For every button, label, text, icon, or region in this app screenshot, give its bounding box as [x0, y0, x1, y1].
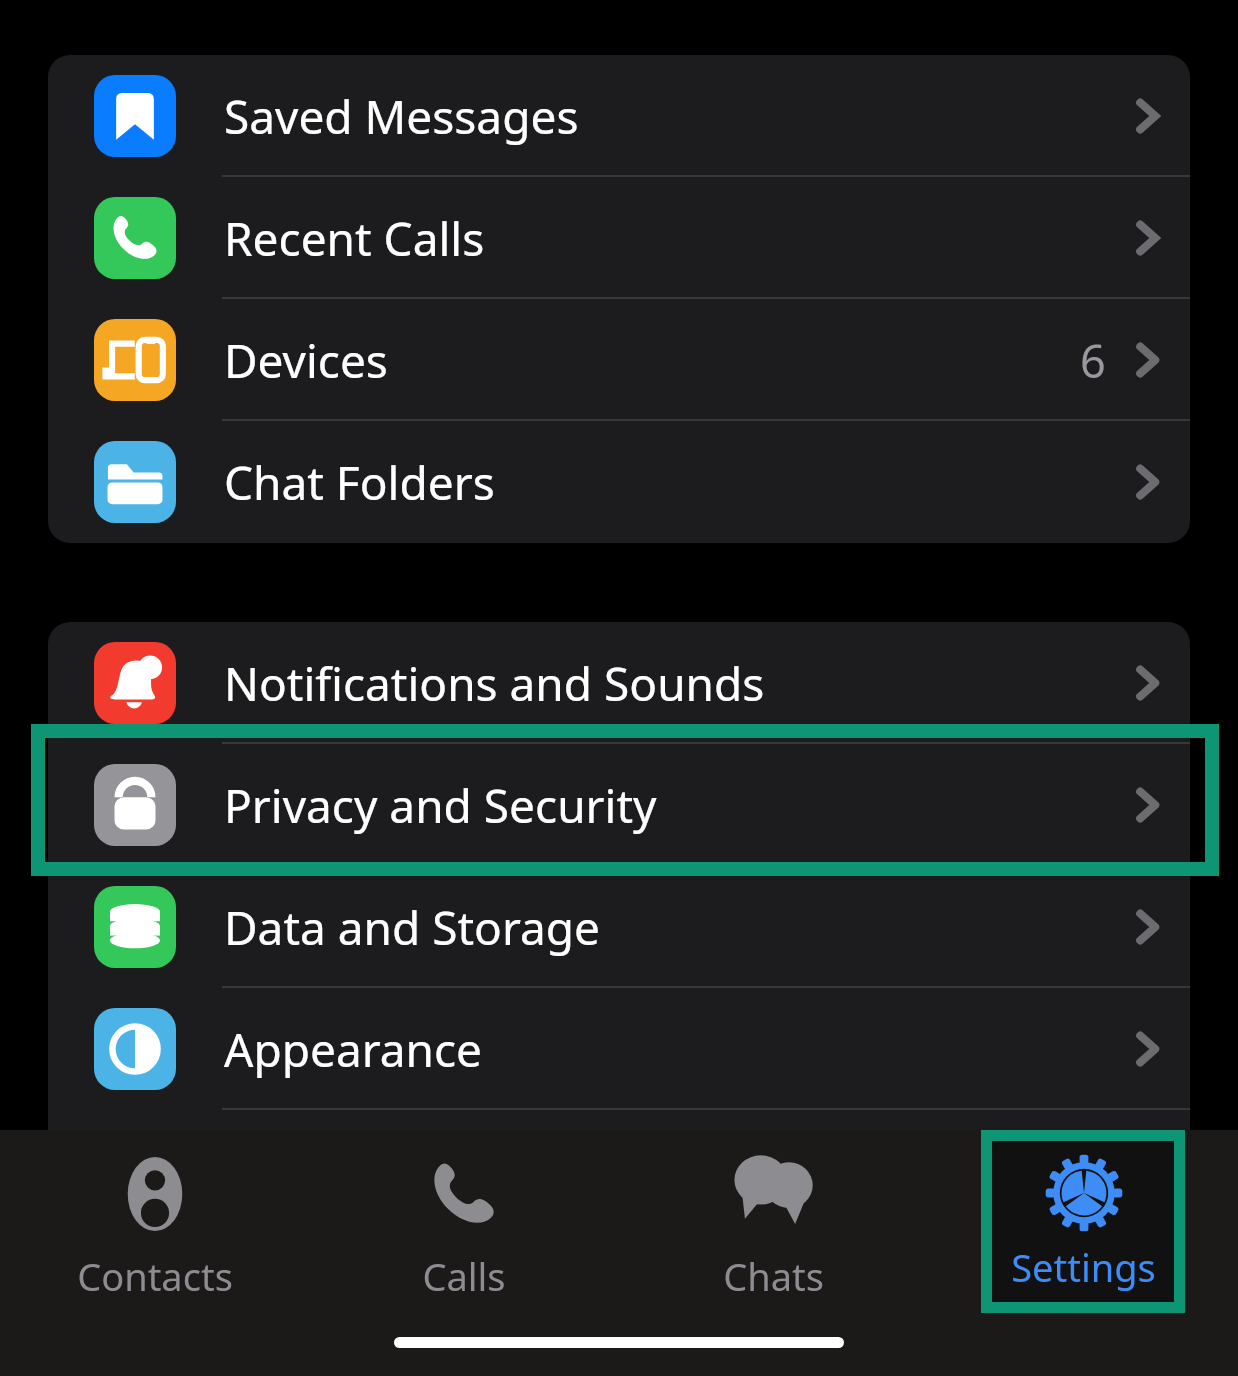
button[interactable]: Privacy and Security [48, 744, 1190, 866]
button[interactable]: Saved Messages [48, 55, 1190, 177]
staticText: Calls [422, 1250, 506, 1302]
staticText: Notifications and Sounds [224, 652, 765, 715]
other: Settings [1040, 1149, 1128, 1237]
staticText: Privacy and Security [224, 774, 657, 837]
staticText: Data and Storage [224, 896, 601, 959]
button[interactable]: Chats [671, 1130, 875, 1313]
staticText: Saved Messages [224, 85, 579, 148]
staticText: Settings [1011, 1241, 1156, 1293]
button[interactable]: Appearance [48, 988, 1190, 1110]
other: Contacts [111, 1150, 199, 1238]
staticText: 6 [1080, 330, 1106, 391]
staticText: Devices [224, 329, 388, 392]
button[interactable]: Recent Calls [48, 177, 1190, 299]
button[interactable]: Chat Folders [48, 421, 1190, 543]
other: Calls [420, 1150, 508, 1238]
staticText: Recent Calls [224, 207, 485, 270]
button[interactable]: Contacts [53, 1130, 257, 1313]
button[interactable]: Notifications and Sounds [48, 622, 1190, 744]
button[interactable]: Data and Storage [48, 866, 1190, 988]
staticText: Chats [723, 1250, 824, 1302]
staticText: Chat Folders [224, 451, 495, 514]
staticText: Contacts [77, 1250, 233, 1302]
button[interactable]: Settings [992, 1141, 1174, 1302]
button[interactable]: Devices [48, 299, 1190, 421]
button[interactable]: Calls [362, 1130, 566, 1313]
other: Chats [730, 1150, 818, 1238]
staticText: Appearance [224, 1018, 483, 1081]
